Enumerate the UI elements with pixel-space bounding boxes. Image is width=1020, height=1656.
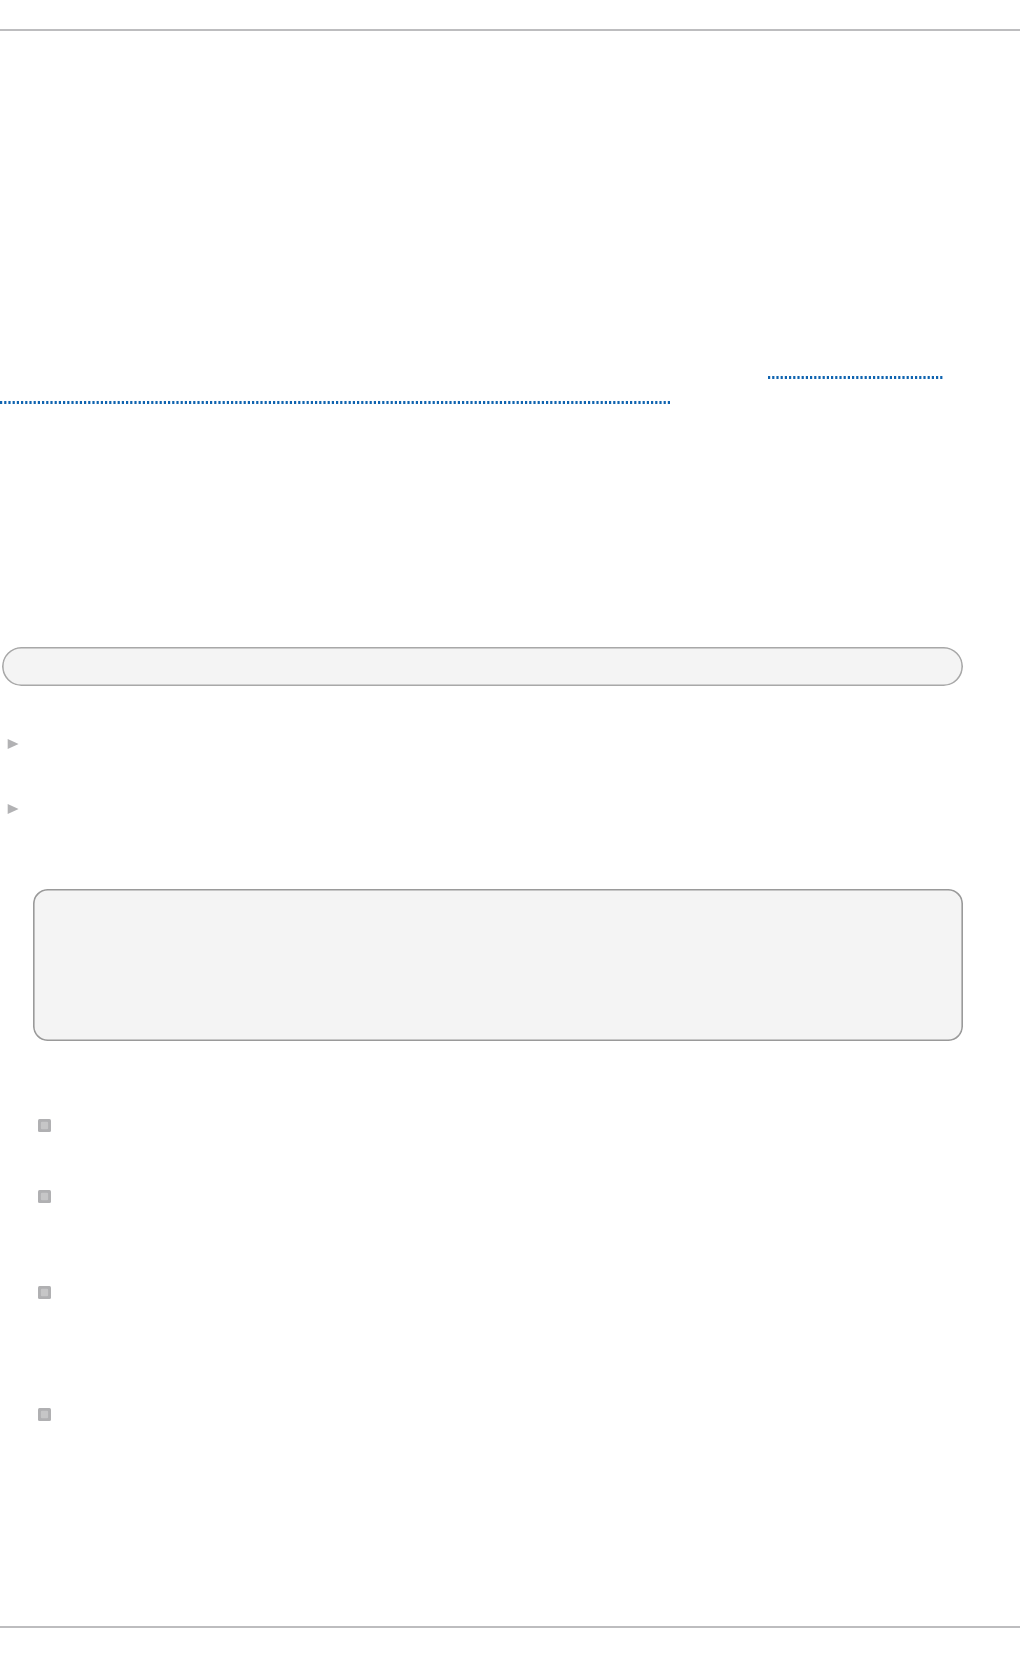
button[interactable]: Input field <box>2 647 963 686</box>
button[interactable] <box>38 1112 964 1138</box>
button[interactable] <box>6 729 964 759</box>
button[interactable]: Code block <box>33 889 963 1041</box>
button[interactable]: Link <box>0 401 671 404</box>
button[interactable] <box>6 794 964 824</box>
other: Link <box>0 401 671 404</box>
button[interactable]: Link <box>768 376 944 379</box>
button[interactable] <box>38 1183 964 1209</box>
button[interactable] <box>38 1401 964 1427</box>
button[interactable] <box>38 1279 964 1305</box>
other: Link <box>768 376 944 379</box>
